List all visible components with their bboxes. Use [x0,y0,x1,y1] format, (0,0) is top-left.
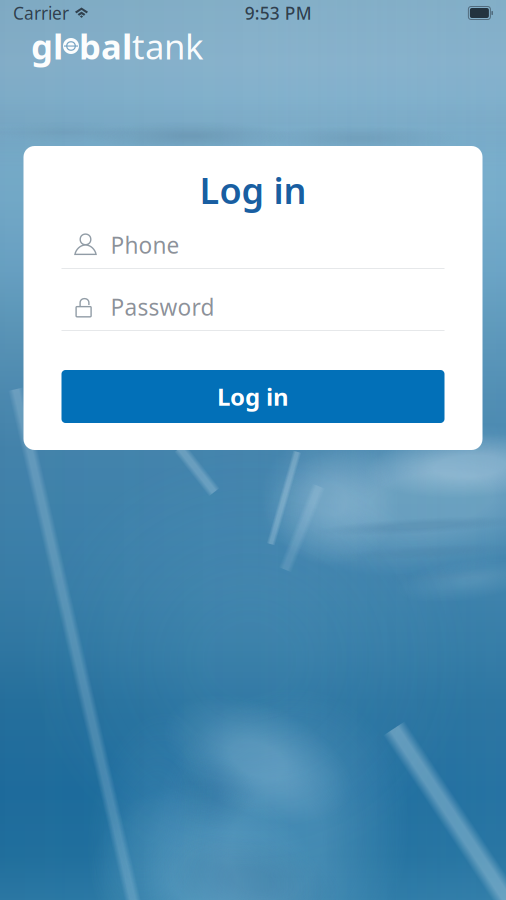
staticText: bal [79,23,132,69]
staticText: Phone [110,230,179,260]
staticText: Carrier [13,1,69,24]
staticText: Log in [217,381,289,412]
staticText: 9:53 PM [245,1,312,24]
button[interactable]: Password [61,291,444,331]
button[interactable]: Phone [61,229,444,269]
button[interactable]: Log in [61,370,444,423]
staticText: Log in [199,166,306,214]
staticText: gl [31,23,63,69]
staticText: tank [132,23,204,69]
staticText: Password [110,292,214,322]
